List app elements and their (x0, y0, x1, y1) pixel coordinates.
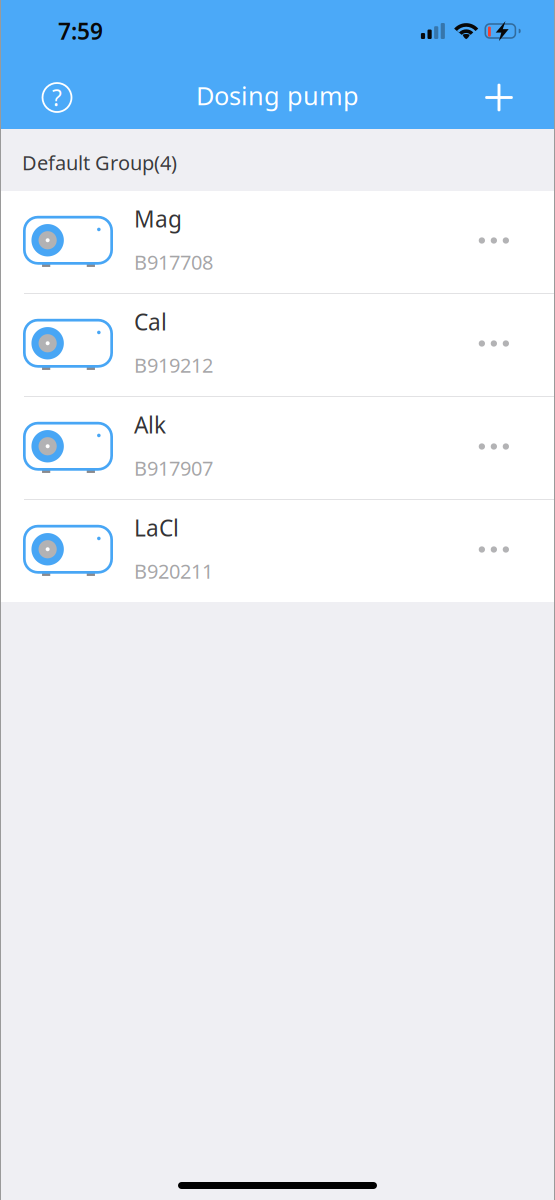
staticText: Alk (134, 410, 166, 440)
button[interactable]: Help (0, 76, 74, 114)
staticText: ? (52, 82, 62, 112)
staticText: 7:59 (58, 16, 103, 46)
button[interactable]: Alk (0, 397, 449, 499)
staticText: Cal (134, 307, 167, 337)
staticText: B917708 (134, 249, 213, 275)
staticText: Default Group(4) (22, 149, 177, 176)
staticText: B917907 (134, 455, 213, 481)
button[interactable]: More options for LaCl (449, 500, 555, 602)
staticText: Dosing pump (196, 79, 359, 112)
staticText: B919212 (134, 352, 213, 378)
button[interactable]: LaCl (0, 500, 449, 602)
button[interactable]: More options for Cal (449, 294, 555, 396)
button[interactable]: Add device (482, 76, 555, 114)
button[interactable]: Mag (0, 191, 449, 293)
staticText: LaCl (134, 513, 179, 543)
button[interactable]: More options for Alk (449, 397, 555, 499)
staticText: B920211 (134, 558, 213, 584)
staticText: Mag (134, 204, 182, 234)
button[interactable]: More options for Mag (449, 191, 555, 293)
button[interactable]: Cal (0, 294, 449, 396)
